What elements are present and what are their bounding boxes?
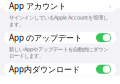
button[interactable]: App アカウント (4, 0, 116, 12)
staticText: › (109, 1, 111, 11)
staticText: サインインしているApple Accountを管理します。 (9, 14, 108, 28)
staticText: App アカウント (9, 1, 66, 11)
staticText: App内ダウンロード (9, 64, 80, 75)
staticText: App のアップデート (9, 32, 82, 43)
staticText: 新しいAppやアップデートを自動的にダウンロードします。 (9, 46, 108, 59)
